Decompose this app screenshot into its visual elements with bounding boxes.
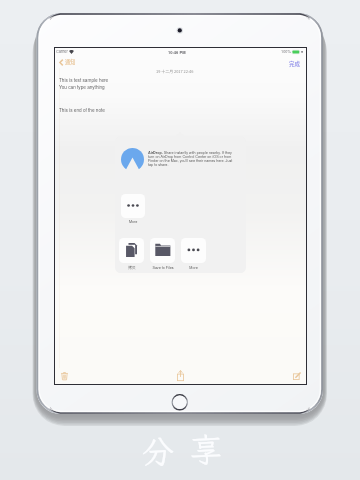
staticText: AirDrop. Share instantly with people nea… (148, 150, 234, 168)
staticText: 拷贝 (128, 265, 136, 270)
button[interactable]: 完成 (289, 60, 301, 68)
staticText: You can type anything (59, 84, 105, 91)
staticText: 100% (281, 49, 291, 55)
button[interactable]: Delete note (59, 370, 70, 381)
staticText: This is test sample here (59, 77, 109, 84)
staticText: 10:46 PM (168, 49, 186, 55)
staticText: Save to Files (152, 265, 174, 270)
staticText: 分 (142, 430, 175, 472)
staticText: 享 (190, 428, 223, 470)
button[interactable]: 通知 (59, 58, 76, 66)
button[interactable]: Save to Files (150, 238, 175, 270)
staticText: More (189, 265, 198, 270)
staticText: More (129, 219, 138, 224)
staticText: This is end of the note (59, 107, 105, 114)
button[interactable]: Compose new note (291, 370, 302, 381)
button[interactable]: AirDrop (121, 148, 144, 171)
button[interactable]: 拷贝 (119, 238, 144, 270)
button[interactable]: Share (175, 369, 186, 381)
staticText: 通知 (65, 58, 76, 66)
staticText: 19 十二月 2017 22:46 (156, 68, 194, 74)
button[interactable]: More (121, 194, 145, 224)
staticText: Carrier (56, 49, 68, 55)
button[interactable]: More (181, 238, 206, 270)
